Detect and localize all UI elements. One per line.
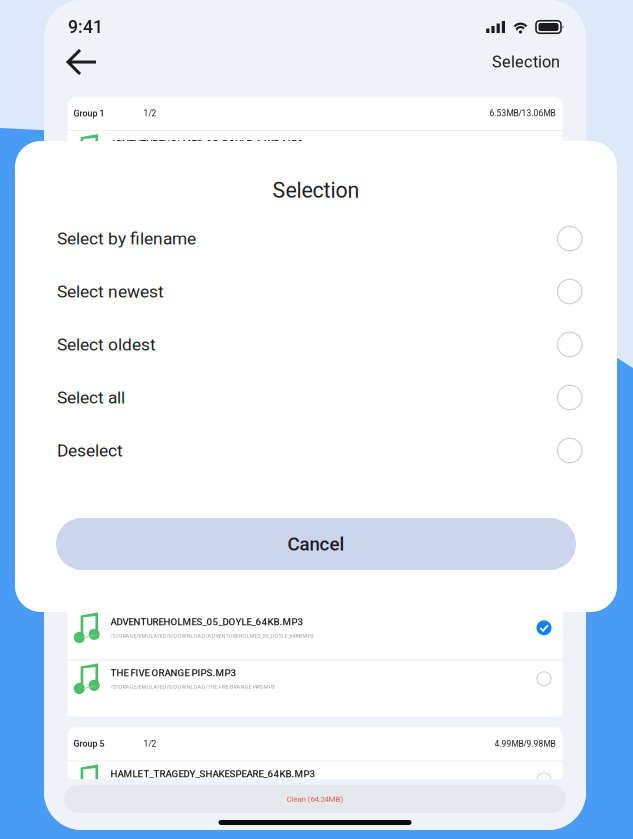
button[interactable]: Deselect [15, 424, 617, 477]
staticText: Group 1 [73, 108, 104, 119]
button[interactable]: Select by filename [15, 212, 617, 265]
staticText: Group 5 [73, 739, 104, 749]
staticText: 4.99MB/9.98MB [494, 739, 555, 749]
staticText: THE FIVE ORANGE PIPS.MP3 [110, 341, 236, 352]
staticText: 1/2 [143, 739, 156, 749]
staticText: 1/2 [143, 109, 156, 118]
staticText: ADVENTUREHOLMES_05_DOYLE_64KB.MP3 [110, 138, 303, 149]
staticText: HAMLET_TRAGEDY_SHAKESPEARE_64KB.MP3 [110, 768, 315, 780]
staticText: 9:41 [68, 17, 103, 37]
button[interactable]: Select newest [15, 265, 617, 318]
staticText: Select by filename [57, 228, 196, 249]
staticText: HAMLET_TRAGEDY_SHAKESPEARE_64KB.MP3 [110, 290, 315, 301]
button[interactable]: Select all [15, 371, 617, 424]
staticText: Select all [57, 387, 125, 408]
button[interactable]: Clean (64.24MB) [64, 785, 566, 813]
button[interactable]: Cancel [56, 518, 576, 570]
staticText: THE FIVE ORANGE PIPS.MP3 [110, 667, 236, 679]
staticText: Select newest [57, 281, 164, 302]
staticText: Cancel [287, 533, 344, 555]
button[interactable]: Back [62, 41, 102, 83]
staticText: ADVENTUREHOLMES_05_DOYLE_64KB.MP3 [110, 819, 303, 831]
staticText: Clean (64.24MB) [286, 794, 343, 804]
staticText: /STORAGE/EMULATED/0/DOWNLOAD/ADVENTUREHO… [110, 633, 313, 639]
button[interactable]: Select oldest [15, 318, 617, 371]
staticText: Selection [492, 52, 560, 72]
staticText: Select oldest [57, 334, 156, 355]
staticText: Selection [272, 178, 359, 203]
staticText: ADVENTUREHOLMES_05_DOYLE_64KB.MP3 [110, 616, 303, 628]
staticText: Deselect [57, 440, 123, 461]
staticText: /STORAGE/EMULATED/0/DOWNLOAD/THE FIVE OR… [110, 684, 274, 690]
staticText: 6.53MB/13.06MB [489, 109, 555, 118]
staticText: ADVENTUREHOLMES_05_DOYLE_64KB.MP3 [110, 442, 303, 453]
button[interactable]: Selection [492, 44, 560, 80]
